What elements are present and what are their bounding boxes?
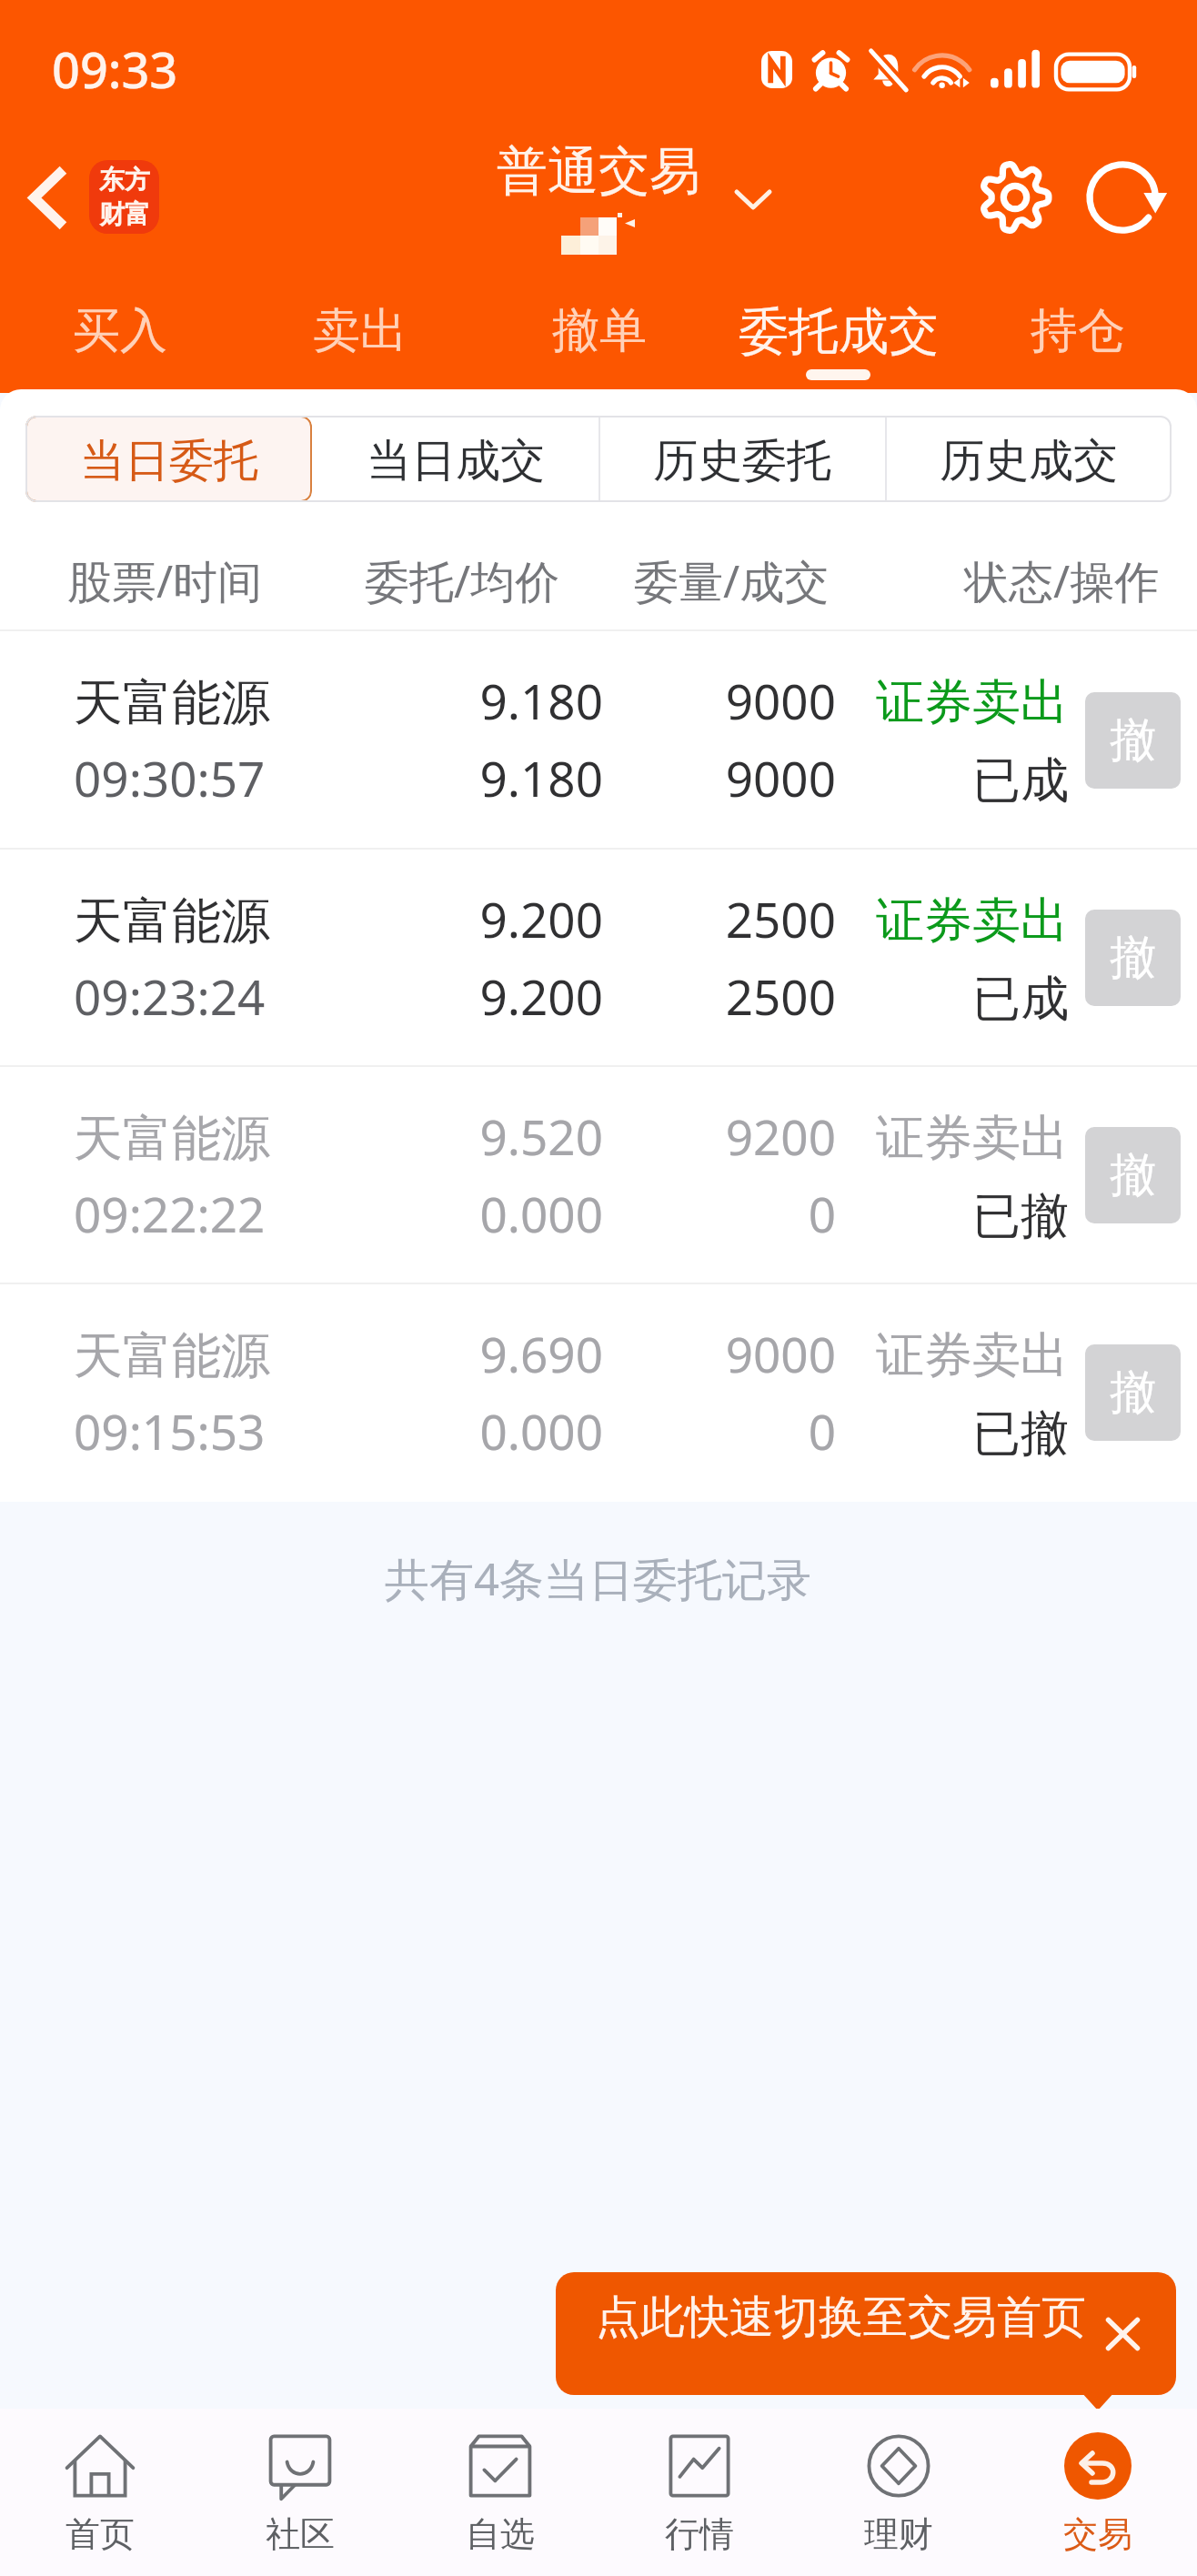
staticText: 9.690 <box>0 1321 603 1386</box>
staticText: 9000 <box>0 745 836 810</box>
button[interactable]: 点此快速切换至交易首页 <box>556 2272 1176 2395</box>
button[interactable]: 天富能源 <box>0 1284 1197 1502</box>
staticText: 撤 <box>1110 1146 1156 1204</box>
staticText: 天富能源 <box>74 891 270 952</box>
staticText: 0.000 <box>0 1398 603 1464</box>
staticText: 撤 <box>1110 929 1156 987</box>
staticText: 买入 <box>73 301 167 361</box>
staticText: 共有4条当日委托记录 <box>385 1548 812 1609</box>
button[interactable]: 天富能源 <box>0 631 1197 850</box>
staticText: 东方 <box>99 164 150 196</box>
button[interactable]: 天富能源 <box>0 1067 1197 1284</box>
button[interactable]: Cancel order <box>1085 1344 1181 1441</box>
staticText: 历史成交 <box>940 433 1118 489</box>
button[interactable]: 自选 <box>400 2409 599 2576</box>
staticText: 委托/均价 <box>365 550 560 611</box>
staticText: 已撤 <box>0 1404 1069 1464</box>
staticText: 9200 <box>0 1103 836 1169</box>
staticText: 2500 <box>0 886 836 951</box>
staticText: 0.000 <box>0 1181 603 1246</box>
staticText: 理财 <box>864 2512 933 2556</box>
button[interactable]: 理财 <box>799 2409 998 2576</box>
button[interactable]: 当日委托 <box>25 416 312 502</box>
button[interactable]: 撤单 <box>479 301 719 392</box>
button[interactable]: 持仓 <box>958 301 1197 392</box>
staticText: 天富能源 <box>74 672 270 734</box>
button[interactable]: 行情 <box>599 2409 799 2576</box>
staticText: 证券卖出 <box>0 1108 1069 1169</box>
staticText: 天富能源 <box>74 1108 270 1170</box>
staticText: 证券卖出 <box>0 1325 1069 1386</box>
staticText: 财富 <box>99 198 150 230</box>
staticText: 天富能源 <box>74 1325 270 1387</box>
staticText: 当日委托 <box>80 433 258 489</box>
staticText: 证券卖出 <box>0 672 1069 733</box>
staticText: 0 <box>0 1398 836 1464</box>
staticText: 交易 <box>1063 2512 1132 2556</box>
staticText: 09:23:24 <box>74 963 266 1029</box>
button[interactable]: Back <box>5 156 87 238</box>
button[interactable]: 历史委托 <box>598 416 885 502</box>
staticText: 0 <box>0 1181 836 1246</box>
staticText: 9.180 <box>0 745 603 810</box>
staticText: 9.180 <box>0 668 603 733</box>
staticText: 撤 <box>1110 1363 1156 1422</box>
staticText: 2500 <box>0 963 836 1029</box>
staticText: 9.520 <box>0 1103 603 1169</box>
staticText: 历史委托 <box>653 433 831 489</box>
staticText: 股票/时间 <box>67 550 263 611</box>
staticText: 点此快速切换至交易首页 <box>596 2289 1086 2346</box>
staticText: 已撤 <box>0 1186 1069 1247</box>
button[interactable]: 历史成交 <box>885 416 1172 502</box>
button[interactable]: 交易 <box>998 2409 1197 2576</box>
staticText: 9000 <box>0 1321 836 1386</box>
staticText: 已成 <box>0 750 1069 811</box>
staticText: 当日成交 <box>367 433 545 489</box>
button[interactable]: 买入 <box>0 301 240 392</box>
button[interactable]: 社区 <box>200 2409 400 2576</box>
button[interactable]: 天富能源 <box>0 850 1197 1067</box>
button[interactable]: Cancel order <box>1085 692 1181 789</box>
button[interactable]: 当日成交 <box>312 416 598 502</box>
staticText: 撤单 <box>552 301 647 361</box>
button[interactable]: 委托成交 <box>719 301 958 392</box>
button[interactable]: 首页 <box>0 2409 200 2576</box>
staticText: 09:33 <box>52 35 178 103</box>
staticText: 已成 <box>0 969 1069 1030</box>
staticText: 行情 <box>665 2512 734 2556</box>
staticText: 委托成交 <box>739 300 939 363</box>
staticText: 自选 <box>466 2512 535 2556</box>
staticText: 撤 <box>1110 711 1156 770</box>
staticText: 证券卖出 <box>0 891 1069 951</box>
button[interactable]: Settings <box>968 150 1062 245</box>
button[interactable]: Switch account <box>709 156 797 244</box>
staticText: 状态/操作 <box>964 550 1160 611</box>
staticText: 持仓 <box>1031 301 1125 361</box>
staticText: 9.200 <box>0 963 603 1029</box>
staticText: 普通交易 <box>497 139 700 204</box>
button[interactable]: Cancel order <box>1085 1127 1181 1223</box>
staticText: 9000 <box>0 668 836 733</box>
staticText: 09:15:53 <box>74 1398 266 1464</box>
staticText: 委量/成交 <box>634 550 830 611</box>
button[interactable]: East Money logo <box>89 160 159 234</box>
button[interactable]: 卖出 <box>240 301 479 392</box>
staticText: 09:22:22 <box>74 1181 266 1246</box>
button[interactable]: Dismiss tip <box>1081 2293 1163 2375</box>
staticText: 卖出 <box>313 301 407 361</box>
button[interactable]: Cancel order <box>1085 910 1181 1006</box>
staticText: 首页 <box>65 2512 135 2556</box>
staticText: 9.200 <box>0 886 603 951</box>
staticText: 社区 <box>266 2512 335 2556</box>
button[interactable]: Refresh <box>1081 150 1175 245</box>
staticText: 09:30:57 <box>74 745 266 810</box>
